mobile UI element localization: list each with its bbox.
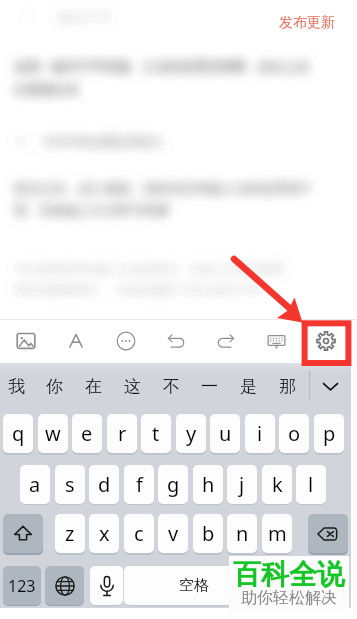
staticText: e: [81, 420, 93, 447]
staticText: 是: [240, 376, 257, 397]
staticText: o: [288, 420, 301, 447]
staticText: 助你轻松解决: [241, 588, 337, 608]
staticText: u: [219, 420, 232, 447]
button[interactable]: 是: [229, 363, 268, 409]
staticText: j: [239, 471, 245, 498]
staticText: h: [202, 471, 215, 498]
staticText: 一、 打开手机设置应用进入: [14, 133, 165, 149]
staticText: 发布更新: [279, 14, 335, 32]
staticText: v: [168, 520, 179, 547]
staticText: x: [99, 520, 110, 547]
button[interactable]: z: [55, 514, 85, 553]
button[interactable]: Undo: [151, 319, 201, 363]
staticText: 一: [201, 376, 218, 397]
staticText: 你: [46, 376, 63, 397]
staticText: 一、 打开手机设置应用进入: [14, 133, 165, 149]
button[interactable]: Voice input: [90, 566, 123, 605]
staticText: 这是一篇关于手机输 入法的设置说明啊，自从上次 次更新以后: [14, 57, 311, 98]
button[interactable]: x: [89, 514, 119, 553]
staticText: 这: [124, 376, 141, 397]
staticText: t: [152, 420, 160, 447]
button[interactable]: Keyboard: [251, 319, 301, 363]
button[interactable]: c: [124, 514, 154, 553]
button[interactable]: h: [193, 465, 223, 504]
button[interactable]: 那: [268, 363, 307, 409]
button[interactable]: u: [210, 414, 240, 453]
staticText: 然后点击，进入键盘，找到语言和输入法的设置项个 置，切换输入方式即可吧要: [14, 180, 313, 219]
staticText: m: [268, 520, 287, 547]
staticText: 可以使用自带的输入法或者第三 方输入法进行配置 相关的配置操作， 具体步骤如下所…: [14, 260, 285, 298]
button[interactable]: g: [158, 465, 188, 504]
button[interactable]: 不: [152, 363, 191, 409]
button[interactable]: p: [314, 414, 344, 453]
staticText: 百科全说: [233, 557, 345, 592]
staticText: i: [257, 420, 263, 447]
button[interactable]: Settings: [301, 319, 351, 363]
button[interactable]: e: [72, 414, 102, 453]
button[interactable]: Text format: [51, 319, 101, 363]
staticText: k: [272, 471, 283, 498]
staticText: b: [202, 520, 215, 547]
button[interactable]: o: [279, 414, 309, 453]
button[interactable]: v: [158, 514, 188, 553]
button[interactable]: i: [245, 414, 275, 453]
button[interactable]: 我: [0, 363, 36, 409]
button[interactable]: f: [124, 465, 154, 504]
staticText: s: [65, 471, 75, 498]
button[interactable]: 发布更新: [273, 11, 341, 35]
button[interactable]: 这: [113, 363, 152, 409]
button[interactable]: 在: [74, 363, 113, 409]
button[interactable]: d: [89, 465, 119, 504]
staticText: 那: [279, 376, 296, 397]
staticText: 这是一篇关于手机输 入法的设置说明啊，自从上次 次更新以后: [14, 57, 311, 98]
button[interactable]: w: [38, 414, 68, 453]
button[interactable]: j: [227, 465, 257, 504]
staticText: f: [136, 471, 143, 498]
button[interactable]: k: [262, 465, 292, 504]
staticText: 然后点击，进入键盘，找到语言和输入法的设置项个 置，切换输入方式即可吧要: [14, 180, 313, 219]
staticText: p: [323, 420, 336, 447]
staticText: 123: [8, 575, 36, 597]
button[interactable]: b: [193, 514, 223, 553]
button[interactable]: Insert image: [0, 319, 51, 363]
button[interactable]: n: [227, 514, 257, 553]
button[interactable]: Redo: [201, 319, 251, 363]
staticText: l: [308, 471, 314, 498]
staticText: 不: [163, 376, 180, 397]
button[interactable]: a: [20, 465, 50, 504]
staticText: g: [167, 471, 180, 498]
button[interactable]: 你: [35, 363, 74, 409]
button[interactable]: More: [101, 319, 151, 363]
staticText: 空格: [179, 576, 209, 595]
button[interactable]: l: [296, 465, 326, 504]
staticText: w: [45, 420, 61, 447]
button[interactable]: 一: [190, 363, 229, 409]
staticText: n: [236, 520, 249, 547]
staticText: 我: [8, 376, 25, 397]
staticText: r: [118, 420, 127, 447]
staticText: d: [98, 471, 111, 498]
button[interactable]: y: [176, 414, 206, 453]
button[interactable]: q: [3, 414, 33, 453]
button[interactable]: s: [55, 465, 85, 504]
staticText: 在: [85, 376, 102, 397]
button[interactable]: Backspace: [308, 514, 348, 553]
staticText: y: [186, 420, 197, 447]
staticText: c: [134, 520, 144, 547]
staticText: q: [12, 420, 25, 447]
button[interactable]: Shift: [3, 514, 43, 553]
button[interactable]: Collapse keyboard: [310, 363, 351, 409]
staticText: 可以使用自带的输入法或者第三 方输入法进行配置 相关的配置操作， 具体步骤如下所…: [14, 260, 285, 298]
button[interactable]: m: [262, 514, 292, 553]
staticText: z: [65, 520, 75, 547]
button[interactable]: r: [107, 414, 137, 453]
button[interactable]: 123: [3, 566, 41, 605]
button[interactable]: 空格: [124, 566, 264, 605]
button[interactable]: Change language: [45, 566, 84, 605]
staticText: a: [29, 471, 41, 498]
button[interactable]: t: [141, 414, 171, 453]
